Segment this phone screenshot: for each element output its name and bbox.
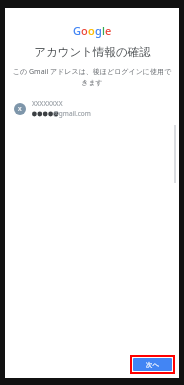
staticText: 次へ — [146, 361, 160, 369]
staticText: G — [73, 23, 81, 38]
staticText: @gmail.com — [53, 109, 91, 118]
staticText: アカウント情報の確認 — [34, 45, 151, 59]
staticText: X — [18, 105, 22, 113]
staticText: g — [95, 23, 102, 38]
staticText: o — [81, 23, 88, 38]
staticText: l — [102, 23, 105, 38]
staticText: o — [88, 23, 95, 38]
button[interactable]: X — [5, 97, 179, 120]
staticText: XXXXXXXX — [32, 99, 63, 108]
staticText: e — [105, 23, 112, 38]
staticText: この Gmail アドレスは、後ほどログインに使用できます — [12, 67, 172, 87]
button[interactable]: 次へ — [133, 358, 172, 371]
